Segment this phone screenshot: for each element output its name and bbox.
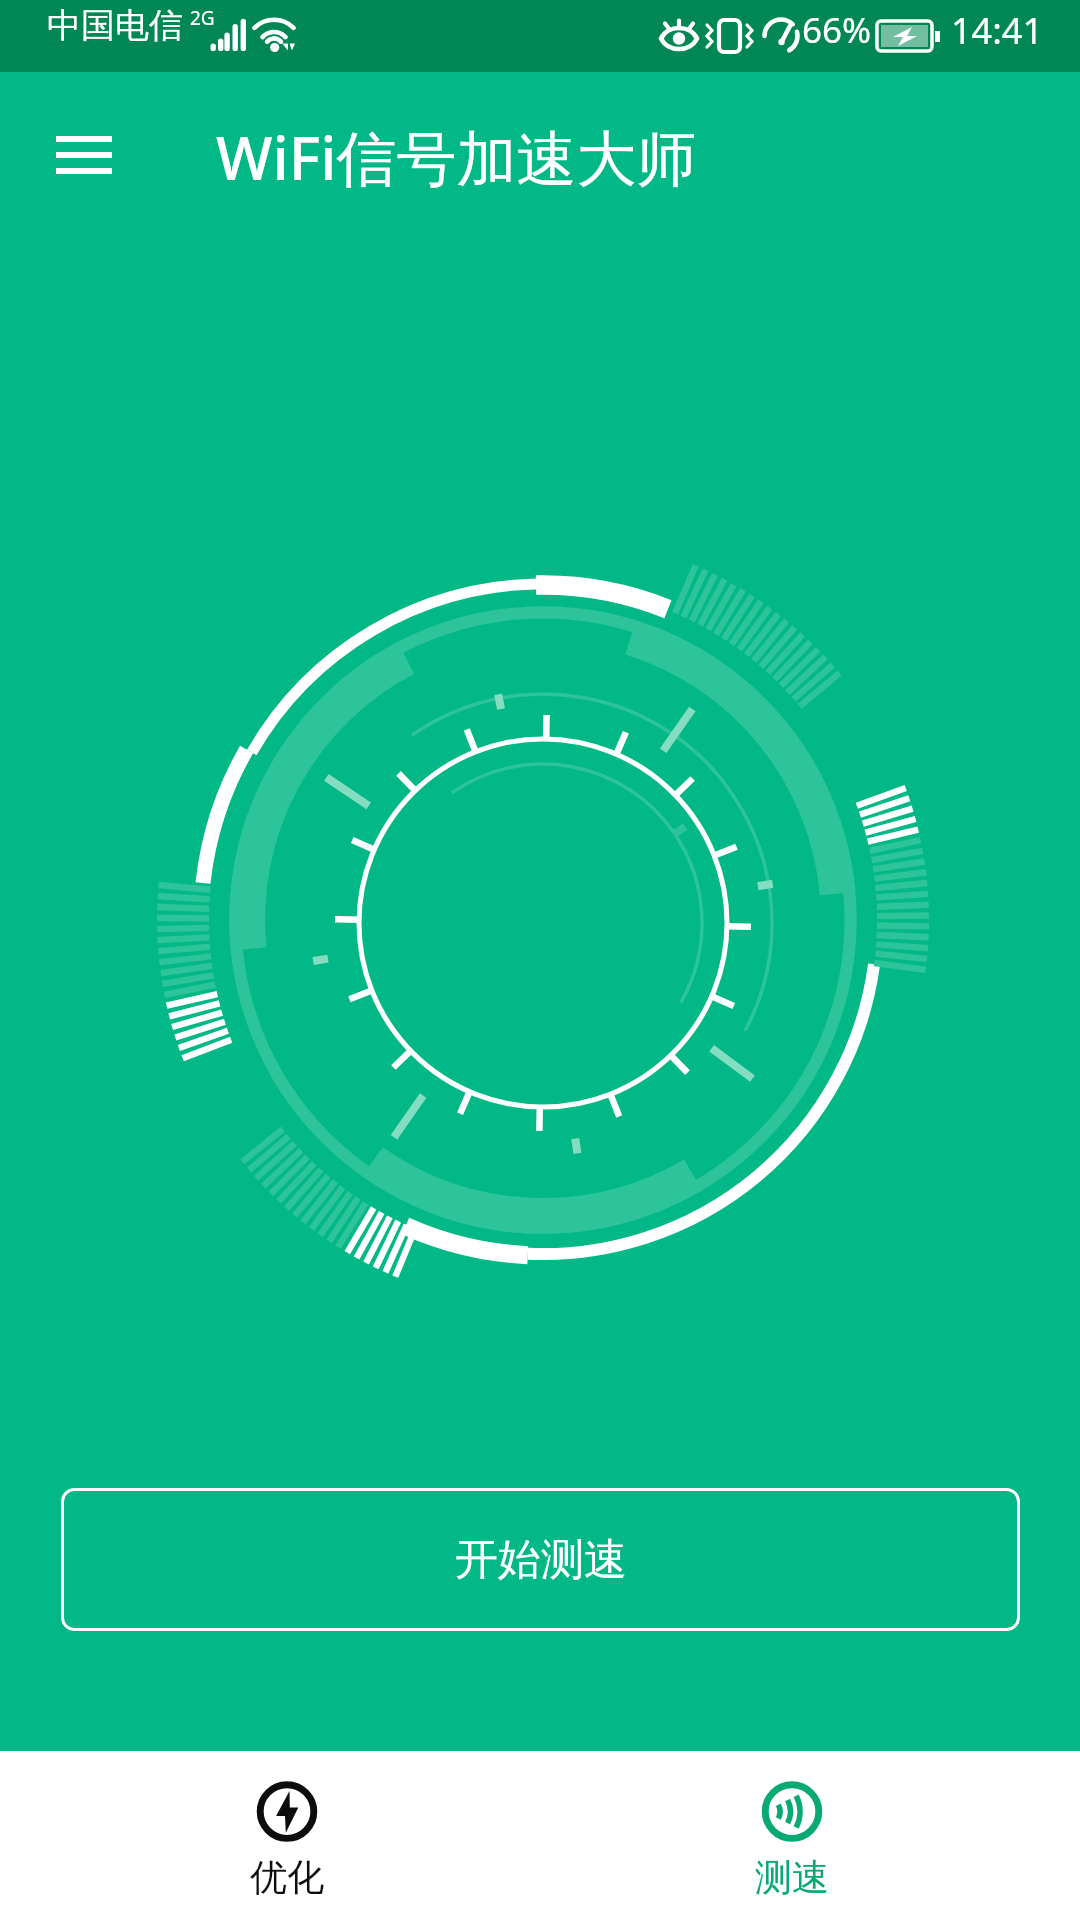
staticText: 优化 bbox=[250, 1854, 324, 1901]
staticText: 66% bbox=[802, 6, 872, 54]
staticText: 开始测速 bbox=[455, 1533, 627, 1587]
staticText: 测速 bbox=[755, 1854, 829, 1901]
button[interactable]: Menu bbox=[40, 122, 128, 182]
staticText: 中国电信 bbox=[47, 4, 183, 47]
button[interactable]: 开始测速 bbox=[61, 1488, 1020, 1631]
button[interactable]: 优化 bbox=[197, 1760, 377, 1906]
button[interactable]: 测速 bbox=[702, 1760, 882, 1906]
staticText: WiFi信号加速大师 bbox=[216, 116, 697, 198]
staticText: 14:41 bbox=[951, 6, 1044, 55]
staticText: 2G bbox=[190, 5, 215, 31]
